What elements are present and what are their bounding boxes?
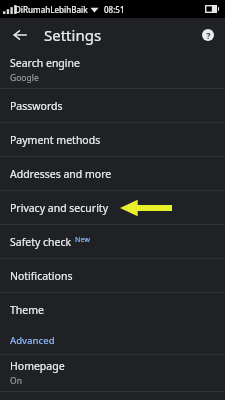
staticText: Homepage: [10, 359, 65, 373]
button[interactable]: Theme: [0, 293, 225, 326]
button[interactable]: Addresses and more: [0, 157, 225, 190]
button[interactable]: Homepage: [0, 355, 225, 391]
button[interactable]: Back: [8, 23, 32, 47]
button[interactable]: Passwords: [0, 89, 225, 122]
staticText: ?: [206, 29, 211, 41]
staticText: Settings: [44, 25, 102, 45]
staticText: Notifications: [10, 269, 73, 283]
button[interactable]: Search engine: [0, 52, 225, 88]
staticText: Addresses and more: [10, 167, 112, 181]
staticText: Safety check: [10, 235, 72, 249]
staticText: Advanced: [10, 334, 55, 347]
staticText: Theme: [10, 303, 44, 317]
staticText: Google: [10, 72, 39, 84]
staticText: Passwords: [10, 99, 63, 113]
button[interactable]: Help: [197, 24, 219, 46]
staticText: Privacy and security: [10, 201, 108, 215]
staticText: Search engine: [10, 56, 80, 70]
staticText: On: [10, 375, 22, 387]
staticText: Payment methods: [10, 133, 101, 147]
button[interactable]: Payment methods: [0, 123, 225, 156]
button[interactable]: Safety check: [0, 225, 225, 258]
staticText: 08:51: [104, 4, 125, 15]
button[interactable]: Advanced: [0, 326, 225, 354]
button[interactable]: Privacy and security: [0, 191, 225, 224]
staticText: New: [75, 235, 90, 245]
staticText: DiRumahLebihBaik: [15, 4, 88, 15]
button[interactable]: Notifications: [0, 259, 225, 292]
